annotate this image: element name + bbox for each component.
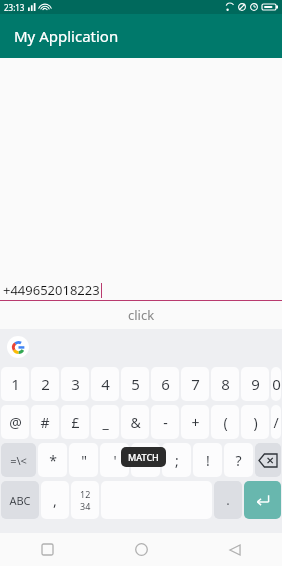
button[interactable]: 2 <box>31 367 59 401</box>
button[interactable]: ' <box>100 443 129 477</box>
staticText: 2 <box>41 374 50 394</box>
staticText: ! <box>206 451 210 470</box>
staticText: ABC <box>9 493 31 508</box>
staticText: / <box>273 413 279 432</box>
staticText: # <box>40 413 50 432</box>
staticText: _ <box>102 413 109 432</box>
button[interactable]: Enter <box>244 481 281 519</box>
staticText: ( <box>223 413 228 432</box>
button[interactable]: , <box>41 481 69 519</box>
button[interactable]: ABC <box>1 481 39 519</box>
staticText: ? <box>235 451 242 470</box>
staticText: MATCH <box>128 451 159 463</box>
button[interactable]: 6 <box>151 367 179 401</box>
staticText: 0 <box>272 374 281 394</box>
button[interactable] <box>255 443 281 477</box>
staticText: * <box>49 451 57 470</box>
staticText: 1 <box>11 374 20 394</box>
staticText: 7 <box>191 374 200 394</box>
button[interactable]: # <box>31 405 59 439</box>
button[interactable]: + <box>181 405 209 439</box>
staticText: £ <box>71 413 80 432</box>
staticText: 34 <box>80 500 91 512</box>
button[interactable]: 12 <box>71 481 99 519</box>
staticText: 6 <box>161 374 170 394</box>
button[interactable]: : <box>131 443 160 477</box>
staticText: ) <box>253 413 258 432</box>
staticText: 4 <box>101 374 110 394</box>
button[interactable]: Home <box>94 533 188 566</box>
staticText: 12 <box>80 488 91 500</box>
button[interactable]: 9 <box>241 367 269 401</box>
button[interactable]: ? <box>224 443 253 477</box>
button[interactable]: * <box>38 443 67 477</box>
button[interactable]: ! <box>193 443 222 477</box>
button[interactable]: . <box>214 481 242 519</box>
button[interactable]: +449652018223 <box>0 280 282 301</box>
button[interactable]: Google search <box>7 336 29 358</box>
button[interactable]: 8 <box>211 367 239 401</box>
button[interactable]: 5 <box>121 367 149 401</box>
staticText: 23:13 <box>4 2 25 13</box>
button[interactable]: ( <box>211 405 239 439</box>
button[interactable]: click <box>0 301 282 329</box>
button[interactable]: 3 <box>61 367 89 401</box>
staticText: My Application <box>14 26 119 46</box>
button[interactable]: ) <box>241 405 269 439</box>
button[interactable]: 4 <box>91 367 119 401</box>
staticText: =\< <box>10 453 27 468</box>
button[interactable]: - <box>151 405 179 439</box>
button[interactable]: 7 <box>181 367 209 401</box>
button[interactable]: @ <box>1 405 29 439</box>
staticText: ; <box>175 451 179 470</box>
button[interactable]: ; <box>162 443 191 477</box>
staticText: click <box>128 306 155 324</box>
button[interactable]: & <box>121 405 149 439</box>
button[interactable]: £ <box>61 405 89 439</box>
staticText: & <box>130 413 141 432</box>
staticText: @ <box>9 413 22 432</box>
staticText: , <box>53 491 57 510</box>
button[interactable]: Back <box>188 533 282 566</box>
staticText: 5 <box>131 374 140 394</box>
staticText: : <box>144 451 148 470</box>
button[interactable]: " <box>69 443 98 477</box>
staticText: 8 <box>221 374 230 394</box>
button[interactable]: / <box>271 405 281 439</box>
staticText: ' <box>113 451 117 470</box>
staticText: 9 <box>251 374 260 394</box>
button[interactable]: _ <box>91 405 119 439</box>
button[interactable]: 1 <box>1 367 29 401</box>
button[interactable]: =\< <box>1 443 36 477</box>
staticText: 3 <box>71 374 80 394</box>
staticText: . <box>226 491 230 509</box>
staticText: +449652018223 <box>3 281 100 299</box>
staticText: " <box>81 451 87 470</box>
staticText: - <box>163 413 168 432</box>
button[interactable]: Recents <box>0 533 94 566</box>
button[interactable]: 0 <box>271 367 281 401</box>
staticText: + <box>191 413 200 432</box>
